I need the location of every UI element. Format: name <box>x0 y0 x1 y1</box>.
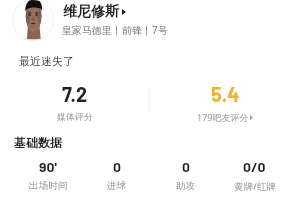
staticText: 出场时间 <box>29 180 68 192</box>
button[interactable]: 5.4 <box>150 82 300 123</box>
button[interactable]: 维尼修斯 <box>63 3 126 21</box>
staticText: 进球 <box>107 180 127 192</box>
staticText: 黄牌/红牌 <box>234 180 276 193</box>
button[interactable]: 90' <box>14 158 82 192</box>
staticText: 皇家马德里丨前锋丨7号 <box>62 23 168 37</box>
staticText: 媒体评分 <box>57 111 93 122</box>
button[interactable]: 最近迷失了 <box>19 54 74 68</box>
staticText: 0 <box>182 158 190 175</box>
staticText: 助攻 <box>176 180 196 192</box>
staticText: 基础数据 <box>14 135 62 150</box>
button[interactable]: 0 <box>151 158 220 192</box>
staticText: 0/0 <box>243 158 266 175</box>
staticText: 7.2 <box>62 82 88 106</box>
staticText: 0 <box>113 158 121 175</box>
staticText: 90' <box>39 158 57 175</box>
button[interactable]: 0 <box>82 158 151 192</box>
button[interactable]: 0/0 <box>220 158 289 193</box>
button[interactable]: 7.2 <box>0 82 150 122</box>
staticText: 5.4 <box>211 82 240 106</box>
staticText: 维尼修斯 <box>63 3 119 21</box>
staticText: 179吧友评分 <box>197 111 249 123</box>
button[interactable]: Player photo <box>12 0 54 41</box>
